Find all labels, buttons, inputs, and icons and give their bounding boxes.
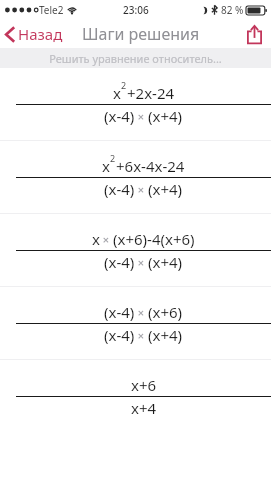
staticText: +2x-24 (127, 83, 175, 103)
button[interactable]: x (0, 214, 271, 286)
button[interactable]: Решить уравнение относитель... (0, 48, 271, 68)
staticText: × (135, 182, 148, 197)
button[interactable]: x (0, 68, 271, 140)
staticText: × (135, 328, 148, 343)
staticText: (x-4) (104, 179, 135, 199)
staticText: (x-4) (104, 106, 135, 126)
button[interactable]: Назад (0, 24, 69, 44)
button[interactable]: (x-4) (0, 287, 271, 359)
staticText: x (92, 229, 100, 249)
staticText: × (100, 232, 113, 247)
staticText: 2 (110, 152, 116, 164)
staticText: Шаги решения (82, 23, 200, 45)
staticText: × (135, 255, 148, 270)
staticText: (x+4) (148, 252, 183, 272)
staticText: (x-4) (104, 325, 135, 345)
staticText: 82 % (221, 3, 244, 17)
staticText: Назад (18, 24, 63, 44)
staticText: x (102, 156, 110, 176)
staticText: x (113, 83, 121, 103)
staticText: +6x-4x-24 (116, 156, 185, 176)
staticText: 23:06 (123, 3, 149, 17)
staticText: Tele2 (39, 3, 64, 17)
staticText: (x-4) (104, 302, 135, 322)
button[interactable]: Share (238, 23, 271, 46)
staticText: (x+6) (148, 302, 183, 322)
staticText: 2 (121, 79, 127, 91)
staticText: (x+4) (148, 106, 183, 126)
staticText: x+6 (131, 375, 157, 395)
staticText: Решить уравнение относитель... (49, 51, 222, 66)
staticText: x+4 (131, 398, 157, 418)
staticText: (x+6)-4(x+6) (113, 229, 195, 249)
staticText: × (135, 109, 148, 124)
staticText: (x+4) (148, 179, 183, 199)
button[interactable]: x (0, 141, 271, 213)
button[interactable]: x+6 (0, 360, 271, 432)
staticText: (x+4) (148, 325, 183, 345)
staticText: × (135, 305, 148, 320)
staticText: (x-4) (104, 252, 135, 272)
